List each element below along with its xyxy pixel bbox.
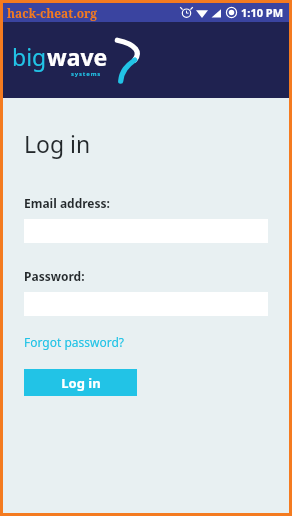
staticText: Log in — [24, 128, 91, 159]
staticText: Email address: — [24, 195, 110, 211]
staticText: Log in — [61, 374, 101, 392]
staticText: wave — [47, 41, 108, 72]
staticText: Forgot password? — [24, 334, 125, 350]
staticText: Password: — [24, 268, 85, 284]
staticText: big — [12, 41, 47, 72]
staticText: systems — [71, 70, 102, 78]
button[interactable]: Forgot password? — [24, 334, 125, 350]
button[interactable]: Log in — [24, 369, 137, 396]
staticText: 1:10 PM — [241, 5, 284, 20]
staticText: hack-cheat.org — [7, 5, 98, 21]
